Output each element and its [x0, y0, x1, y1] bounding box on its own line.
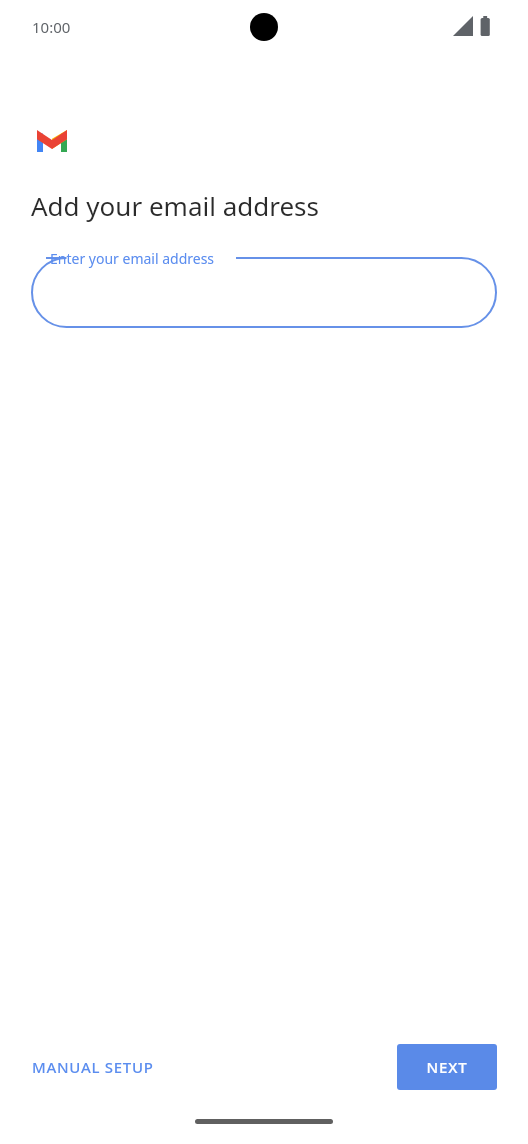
- staticText: 10:00: [32, 17, 71, 37]
- button[interactable]: NEXT: [397, 1044, 497, 1090]
- staticText: Enter your email address: [50, 249, 215, 268]
- button[interactable]: MANUAL SETUP: [24, 1046, 184, 1088]
- button[interactable]: Enter your email address: [32, 246, 496, 327]
- other: Gmail: [37, 130, 67, 152]
- staticText: MANUAL SETUP: [32, 1057, 154, 1077]
- staticText: NEXT: [426, 1057, 468, 1077]
- staticText: Add your email address: [31, 188, 320, 223]
